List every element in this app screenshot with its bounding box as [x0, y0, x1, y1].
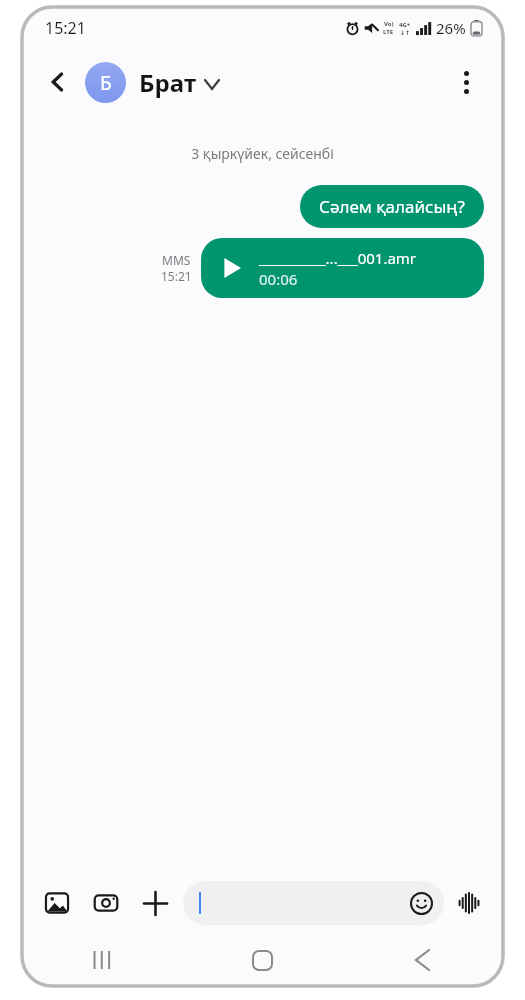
button[interactable]: Play	[201, 238, 484, 298]
staticText: Б	[100, 70, 112, 96]
staticText: 4G+	[399, 21, 411, 29]
staticText: MMS	[162, 252, 191, 268]
other: Play	[215, 251, 249, 285]
staticText: 00:06	[259, 269, 298, 289]
button[interactable]: Emoji	[404, 886, 438, 920]
staticText: Vo)	[384, 20, 394, 28]
staticText: 15:21	[161, 268, 192, 284]
button[interactable]: Б	[85, 62, 219, 103]
button[interactable]: Home	[182, 934, 342, 986]
staticText: ↓↑	[400, 29, 411, 36]
staticText: 26%	[436, 18, 466, 38]
button[interactable]: Voice message	[450, 884, 488, 922]
staticText: Брат	[139, 66, 196, 99]
staticText: 15:21	[45, 17, 86, 39]
button[interactable]: Camera	[86, 883, 126, 923]
staticText: __________...___001.amr	[259, 248, 417, 268]
button[interactable]: More options	[444, 60, 488, 104]
button[interactable]: Recents	[23, 934, 182, 986]
button[interactable]: Сәлем қалайсың?	[300, 185, 484, 228]
staticText: Сәлем қалайсың?	[319, 195, 465, 218]
staticText: LTE	[383, 28, 394, 36]
button[interactable]: Emoji	[183, 881, 444, 925]
button[interactable]: Gallery	[37, 883, 77, 923]
button[interactable]: Add attachment	[135, 883, 175, 923]
button[interactable]: Back	[37, 61, 79, 103]
staticText: 3 қыркүйек, сейсенбі	[23, 144, 502, 163]
button[interactable]: Back	[342, 934, 502, 986]
